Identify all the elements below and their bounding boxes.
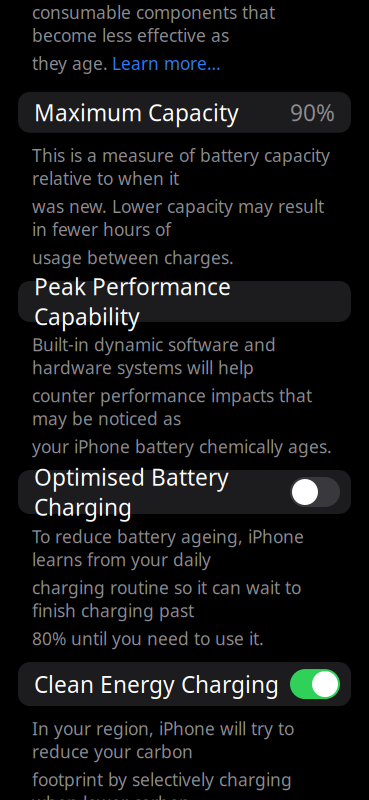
staticText: consumable components that become less e… [32, 1, 275, 47]
staticText: Learn more… [112, 52, 221, 75]
staticText: To reduce battery ageing, iPhone learns … [32, 525, 304, 571]
staticText: was new. Lower capacity may result in fe… [32, 195, 324, 241]
staticText: 80% until you need to use it. [32, 627, 264, 650]
staticText: This is a measure of battery capacity re… [32, 144, 330, 190]
button[interactable]: Learn more… [112, 52, 221, 75]
staticText: footprint by selectively charging when l… [32, 768, 292, 800]
staticText: counter performance impacts that may be … [32, 384, 312, 430]
staticText: 90% [290, 97, 335, 127]
staticText: your iPhone battery chemically ages. [32, 435, 332, 458]
staticText: Built-in dynamic software and hardware s… [32, 333, 276, 379]
button[interactable]: Clean Energy Charging on [290, 669, 340, 699]
staticText: Maximum Capacity [34, 97, 239, 127]
staticText: Peak Performance Capability [34, 271, 231, 331]
staticText: Optimised Battery Charging [34, 462, 229, 522]
staticText: charging routine so it can wait to finis… [32, 576, 301, 622]
button[interactable]: Optimised Battery Charging off [290, 477, 340, 507]
staticText: Clean Energy Charging [34, 669, 279, 699]
staticText: usage between charges. [32, 246, 234, 269]
staticText: they age. [32, 52, 108, 75]
staticText: In your region, iPhone will try to reduc… [32, 717, 294, 763]
